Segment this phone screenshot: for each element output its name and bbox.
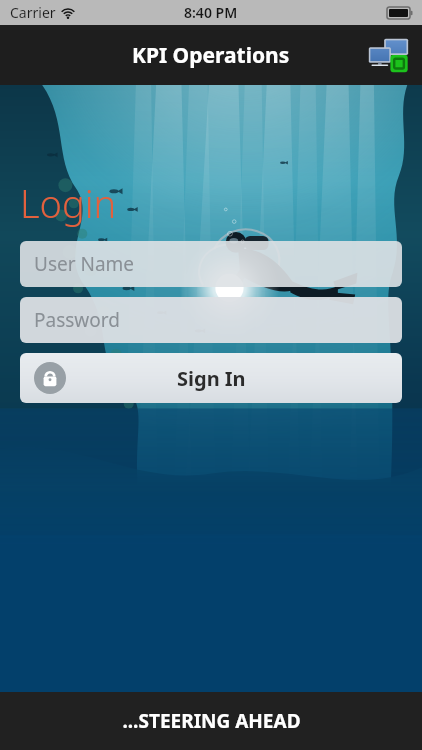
staticText: User Name [34,251,135,277]
button[interactable]: Password [20,297,402,343]
staticText: ...STEERING AHEAD [122,708,301,734]
staticText: Carrier [10,3,56,22]
button[interactable]: Sign In [20,353,402,403]
button[interactable]: User Name [20,241,402,287]
staticText: Sign In [177,365,246,392]
staticText: 8:40 PM [184,3,238,22]
staticText: Password [34,307,120,333]
button[interactable]: Remote desktop [364,31,412,79]
staticText: KPI Operations [132,41,290,70]
staticText: Login [20,177,117,229]
